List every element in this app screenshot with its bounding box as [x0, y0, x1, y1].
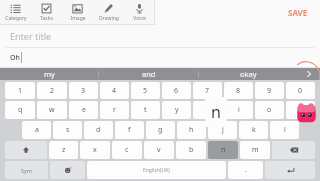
staticText: i: [238, 105, 240, 115]
staticText: Enter title: [10, 30, 52, 42]
button[interactable]: my: [0, 68, 98, 80]
staticText: c: [125, 145, 129, 155]
staticText: 0: [298, 86, 303, 96]
staticText: m: [252, 145, 259, 155]
staticText: Tasks: [40, 15, 53, 22]
button[interactable]: w: [37, 101, 67, 119]
button[interactable]: 1: [5, 82, 35, 99]
staticText: p: [298, 105, 303, 115]
button[interactable]: Drawing: [93, 0, 124, 25]
button[interactable]: c: [112, 141, 142, 159]
staticText: Drawing: [99, 15, 119, 22]
staticText: Voice: [133, 15, 146, 22]
staticText: 6: [174, 86, 179, 96]
button[interactable]: s: [53, 121, 82, 139]
staticText: 2: [50, 86, 55, 96]
staticText: 5: [143, 86, 148, 96]
staticText: d: [96, 125, 101, 135]
button[interactable]: x: [80, 141, 110, 159]
button[interactable]: 2: [37, 82, 67, 99]
staticText: j: [222, 125, 224, 135]
button[interactable]: [5, 141, 47, 159]
button[interactable]: [272, 141, 315, 159]
button[interactable]: o: [255, 101, 284, 119]
button[interactable]: SAVE: [284, 4, 312, 21]
button[interactable]: n: [208, 141, 238, 159]
button[interactable]: Tasks: [31, 0, 62, 25]
staticText: .: [245, 165, 247, 175]
staticText: h: [189, 125, 194, 135]
staticText: n: [211, 101, 221, 123]
staticText: Image: [70, 15, 86, 22]
staticText: f: [128, 125, 131, 135]
button[interactable]: Sticker: [296, 103, 317, 124]
button[interactable]: [50, 161, 85, 179]
button[interactable]: 4: [100, 82, 129, 99]
staticText: and: [142, 69, 156, 79]
button[interactable]: 9: [255, 82, 284, 99]
staticText: n: [221, 145, 226, 155]
button[interactable]: 6: [162, 82, 191, 99]
staticText: 9: [267, 86, 272, 96]
staticText: okay: [240, 69, 257, 79]
button[interactable]: .: [228, 161, 263, 179]
button[interactable]: [265, 161, 315, 179]
button[interactable]: v: [144, 141, 174, 159]
button[interactable]: y: [162, 101, 191, 119]
staticText: Oh: [10, 53, 20, 63]
staticText: 8: [236, 86, 241, 96]
button[interactable]: l: [270, 121, 299, 139]
staticText: y: [175, 105, 179, 115]
button[interactable]: 0: [286, 82, 315, 99]
button[interactable]: English(UK): [87, 161, 226, 179]
button[interactable]: i: [224, 101, 253, 119]
button[interactable]: Image: [62, 0, 93, 25]
staticText: e: [82, 105, 86, 115]
button[interactable]: 8: [224, 82, 253, 99]
button[interactable]: u: [193, 101, 222, 119]
button[interactable]: Sym: [5, 161, 48, 179]
button[interactable]: Oh: [0, 48, 320, 67]
button[interactable]: d: [84, 121, 113, 139]
button[interactable]: m: [240, 141, 270, 159]
button[interactable]: Category: [0, 0, 31, 25]
staticText: w: [49, 105, 55, 115]
button[interactable]: f: [115, 121, 144, 139]
button[interactable]: g: [146, 121, 175, 139]
staticText: k: [252, 125, 256, 135]
staticText: SAVE: [288, 7, 308, 18]
button[interactable]: 5: [131, 82, 160, 99]
staticText: z: [62, 145, 66, 155]
button[interactable]: k: [239, 121, 268, 139]
button[interactable]: e: [69, 101, 98, 119]
button[interactable]: r: [100, 101, 129, 119]
button[interactable]: Enter title: [0, 25, 320, 47]
button[interactable]: 3: [69, 82, 98, 99]
button[interactable]: q: [5, 101, 35, 119]
staticText: my: [44, 69, 55, 79]
button[interactable]: t: [131, 101, 160, 119]
staticText: b: [189, 145, 194, 155]
button[interactable]: z: [49, 141, 78, 159]
button[interactable]: b: [176, 141, 206, 159]
staticText: o: [267, 105, 272, 115]
button[interactable]: Voice: [124, 0, 155, 25]
button[interactable]: 7: [193, 82, 222, 99]
staticText: s: [66, 125, 70, 135]
button[interactable]: okay: [199, 68, 298, 80]
button[interactable]: More suggestions: [298, 68, 320, 80]
staticText: 7: [205, 86, 210, 96]
button[interactable]: p: [286, 101, 315, 119]
staticText: Sym: [21, 167, 32, 174]
button[interactable]: h: [177, 121, 206, 139]
staticText: 3: [81, 86, 86, 96]
button[interactable]: j: [208, 121, 237, 139]
button[interactable]: a: [22, 121, 51, 139]
staticText: v: [157, 145, 161, 155]
staticText: 4: [112, 86, 117, 96]
staticText: r: [113, 105, 116, 115]
staticText: t: [144, 105, 147, 115]
button[interactable]: and: [99, 68, 198, 80]
staticText: Category: [5, 15, 27, 22]
